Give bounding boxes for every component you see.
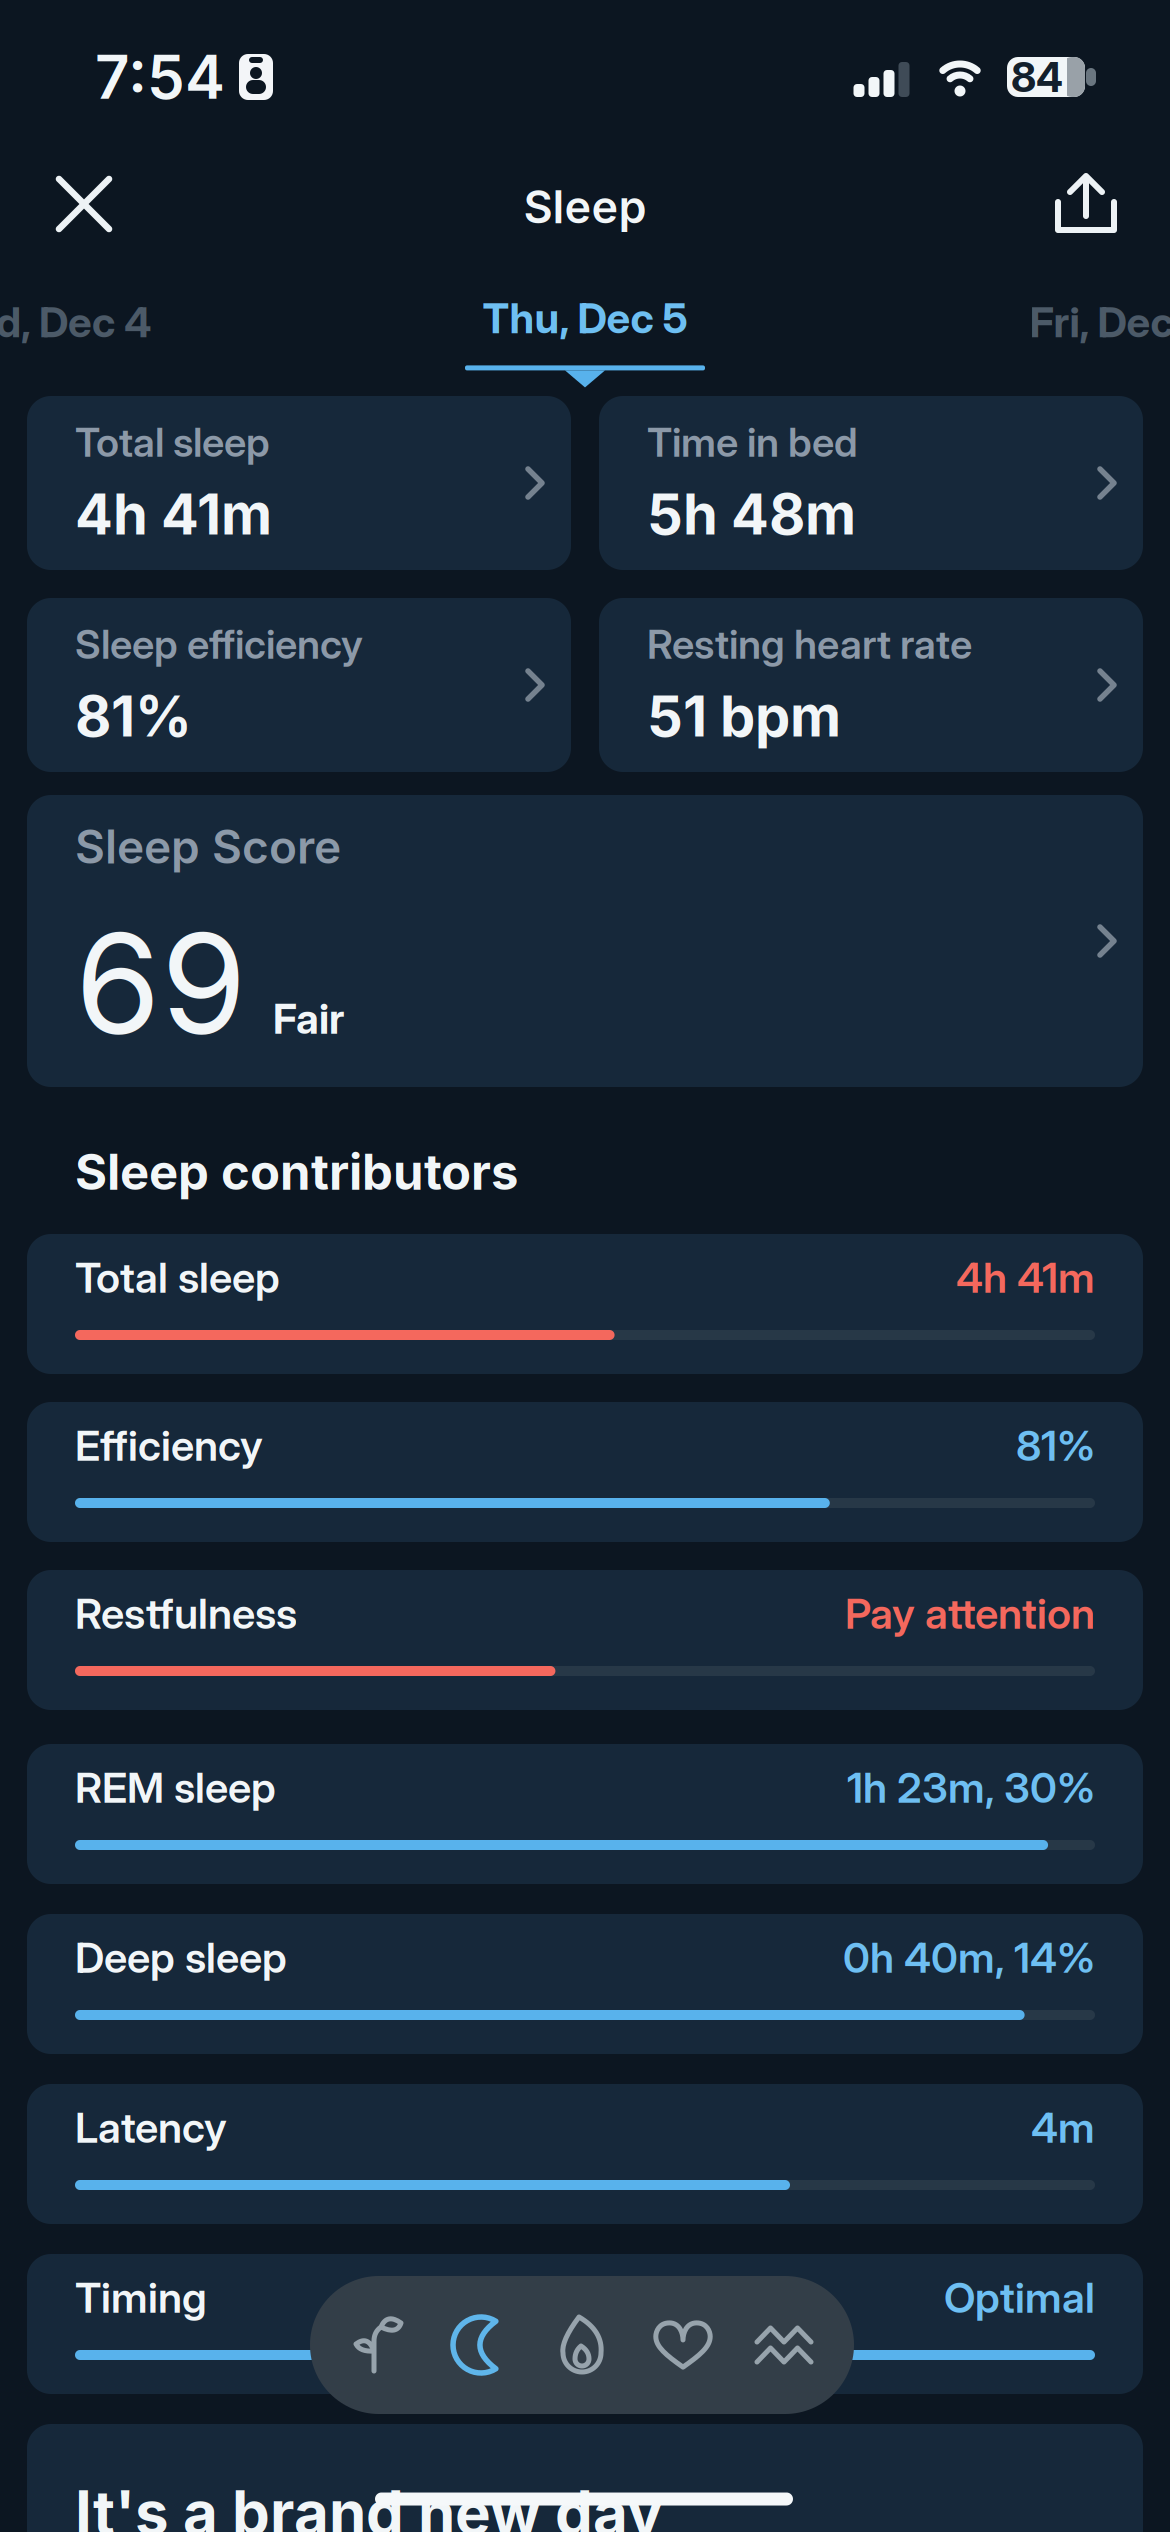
staticText: 0h 40m, 14%: [843, 1932, 1095, 1983]
button[interactable]: Timing: [27, 2254, 1143, 2394]
staticText: 84: [1011, 52, 1063, 102]
staticText: 81%: [75, 682, 192, 750]
button[interactable]: Total sleep: [27, 396, 571, 570]
staticText: It's a brand new day: [75, 2476, 663, 2532]
staticText: Deep sleep: [75, 1932, 287, 1983]
staticText: Fair: [273, 994, 344, 1044]
button[interactable]: Today: [352, 2317, 408, 2373]
staticText: 4h 41m: [75, 480, 272, 548]
button[interactable]: Restfulness: [27, 1570, 1143, 1710]
staticText: Thu, Dec 5: [482, 293, 687, 343]
staticText: 4m: [1031, 2102, 1095, 2153]
staticText: Sleep Score: [75, 819, 341, 875]
staticText: Sleep contributors: [75, 1142, 518, 1202]
button[interactable]: Heart: [655, 2317, 711, 2373]
button[interactable]: Deep sleep: [27, 1914, 1143, 2054]
button[interactable]: Wed, Dec 4: [0, 297, 152, 347]
staticText: Efficiency: [75, 1420, 263, 1471]
button[interactable]: Efficiency: [27, 1402, 1143, 1542]
staticText: Restfulness: [75, 1588, 297, 1639]
button[interactable]: Stress: [756, 2317, 812, 2373]
staticText: Wed, Dec 4: [0, 297, 152, 347]
staticText: 51 bpm: [647, 682, 841, 750]
staticText: 1h 23m, 30%: [847, 1762, 1095, 1813]
staticText: Optimal: [944, 2272, 1095, 2323]
button[interactable]: Close: [56, 176, 112, 232]
staticText: REM sleep: [75, 1762, 276, 1813]
button[interactable]: REM sleep: [27, 1744, 1143, 1884]
staticText: Total sleep: [75, 1252, 280, 1303]
staticText: 4h 41m: [956, 1252, 1095, 1303]
button[interactable]: Time in bed: [599, 396, 1143, 570]
staticText: Sleep efficiency: [75, 620, 363, 668]
button[interactable]: Latency: [27, 2084, 1143, 2224]
staticText: Resting heart rate: [647, 620, 972, 668]
button[interactable]: Fri, Dec 6: [1029, 297, 1170, 347]
staticText: 7:54: [95, 41, 225, 113]
staticText: Timing: [75, 2272, 207, 2323]
staticText: 5h 48m: [647, 480, 856, 548]
button[interactable]: Sleep Score: [27, 795, 1143, 1087]
staticText: Latency: [75, 2102, 227, 2153]
button[interactable]: Share: [1054, 172, 1118, 236]
button[interactable]: Thu, Dec 5: [465, 293, 705, 387]
staticText: Sleep: [523, 180, 646, 234]
button[interactable]: Resting heart rate: [599, 598, 1143, 772]
button[interactable]: Sleep efficiency: [27, 598, 571, 772]
staticText: Fri, Dec 6: [1029, 297, 1170, 347]
button[interactable]: Total sleep: [27, 1234, 1143, 1374]
button[interactable]: Activity: [554, 2317, 610, 2373]
button[interactable]: Sleep: [453, 2317, 509, 2373]
staticText: 69: [75, 900, 247, 1067]
staticText: Time in bed: [647, 418, 858, 466]
staticText: Pay attention: [845, 1588, 1095, 1639]
staticText: Total sleep: [75, 418, 270, 466]
staticText: 81%: [1016, 1420, 1095, 1471]
